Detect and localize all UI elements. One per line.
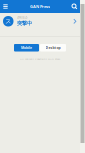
button[interactable]: Desktop	[40, 44, 66, 51]
button[interactable]: Search	[69, 0, 80, 13]
staticText: All content Copyright GAN Press	[20, 57, 60, 60]
staticText: Mobile	[21, 45, 32, 50]
button[interactable]: ス	[0, 13, 80, 36]
staticText: 2014.03.25	[17, 16, 27, 19]
staticText: ス	[5, 17, 11, 25]
staticText: 突撃中	[17, 20, 32, 26]
staticText: Desktop	[45, 45, 60, 50]
staticText: GAN Press	[30, 4, 50, 9]
button[interactable]: Mobile	[14, 44, 39, 51]
button[interactable]: Menu	[0, 0, 11, 13]
